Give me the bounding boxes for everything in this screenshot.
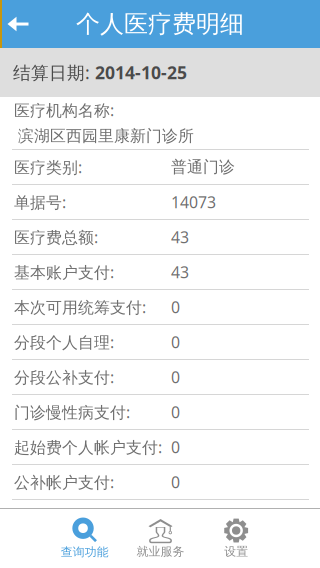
staticText: 0 [171, 436, 180, 458]
button[interactable]: 设置 [198, 509, 274, 568]
staticText: 本次可用统筹支付: [14, 296, 146, 318]
button[interactable]: 本次可用统筹支付: [0, 290, 320, 325]
staticText: 分段个人自理: [14, 331, 114, 353]
staticText: 14073 [171, 191, 216, 213]
button[interactable]: 单据号: [0, 185, 320, 220]
button[interactable]: 分段个人自理: [0, 325, 320, 360]
staticText: 43 [171, 261, 189, 283]
staticText: 单据号: [14, 191, 66, 213]
staticText: 基本账户支付: [14, 261, 114, 283]
staticText: 查询功能 [61, 544, 109, 559]
staticText: 43 [171, 226, 189, 248]
staticText: 设置 [224, 544, 248, 559]
button[interactable]: 分段公补支付: [0, 360, 320, 395]
button[interactable]: 医疗类别: [0, 150, 320, 185]
staticText: 个人医疗费明细 [76, 9, 244, 39]
staticText: 0 [171, 401, 180, 423]
button[interactable]: 公补帐户支付: [0, 465, 320, 500]
button[interactable]: 查询功能 [47, 509, 123, 568]
staticText: 医疗费总额: [14, 226, 98, 248]
staticText: 医疗机构名称: [14, 99, 114, 121]
button[interactable]: 门诊慢性病支付: [0, 395, 320, 430]
staticText: 门诊慢性病支付: [14, 401, 130, 423]
staticText: 医疗类别: [14, 156, 82, 178]
staticText: 0 [171, 331, 180, 353]
button[interactable]: Back [0, 0, 36, 48]
staticText: 公补帐户支付: [14, 471, 114, 493]
button[interactable]: 基本账户支付: [0, 255, 320, 290]
staticText: 0 [171, 296, 180, 318]
button[interactable]: 起始费个人帐户支付: [0, 430, 320, 465]
staticText: 2014-10-25 [95, 60, 187, 84]
staticText: 滨湖区西园里康新门诊所 [18, 126, 194, 146]
button[interactable]: 就业服务 [123, 509, 198, 568]
button[interactable]: 医疗机构名称: [0, 97, 320, 150]
button[interactable]: 医疗费总额: [0, 220, 320, 255]
staticText: 起始费个人帐户支付: [14, 436, 162, 458]
staticText: 就业服务 [136, 544, 184, 559]
staticText: 普通门诊 [171, 157, 235, 177]
staticText: 0 [171, 471, 180, 493]
staticText: 0 [171, 366, 180, 388]
staticText: 分段公补支付: [14, 366, 114, 388]
staticText: 结算日期: [13, 60, 95, 84]
